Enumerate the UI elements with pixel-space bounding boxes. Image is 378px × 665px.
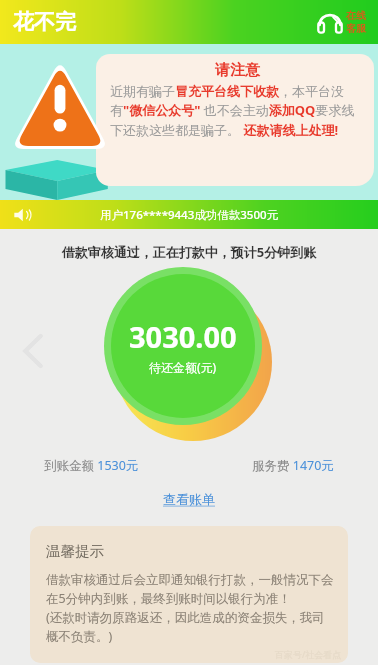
staticText: 到账金额 1530元 — [44, 457, 139, 474]
staticText: 花不完 — [13, 9, 76, 35]
staticText: 服务费 1470元 — [252, 457, 334, 474]
staticText: 用户176****9443成功借款3500元 — [100, 207, 279, 223]
staticText: 百家号/社会看点 — [275, 648, 342, 660]
staticText: 借款审核通过，正在打款中，预计5分钟到账 — [0, 243, 378, 261]
staticText: 请注意 — [215, 61, 260, 80]
staticText: 待还金额(元) — [149, 359, 217, 375]
staticText: 查看账单 — [163, 491, 215, 507]
staticText: 客服 — [346, 22, 366, 35]
staticText: 3030.00 — [129, 317, 237, 356]
button[interactable]: 在线客服 — [313, 7, 370, 37]
staticText: 在线 — [346, 9, 366, 22]
staticText: 借款审核通过后会立即通知银行打款，一般情况下会在5分钟内到账，最终到账时间以银行… — [46, 572, 334, 645]
staticText: 近期有骗子冒充平台线下收款，本平台没有"微信公众号" 也不会主动添加QQ要求线下… — [110, 83, 364, 139]
button[interactable]: 查看账单 — [155, 488, 223, 510]
staticText: 温馨提示 — [46, 542, 104, 560]
